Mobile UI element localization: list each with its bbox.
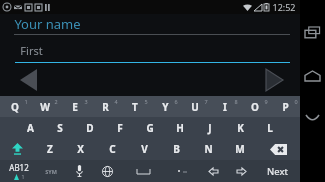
- button[interactable]: Hide keyboard: [300, 106, 325, 130]
- staticText: E: [72, 100, 78, 114]
- button[interactable]: Move right: [227, 160, 255, 182]
- button[interactable]: P: [270, 96, 300, 117]
- button[interactable]: R: [90, 96, 120, 117]
- button[interactable]: Previous: [10, 65, 46, 95]
- staticText: First: [20, 43, 43, 58]
- staticText: AB12: [9, 162, 29, 173]
- button[interactable]: B: [160, 138, 192, 160]
- button[interactable]: E: [60, 96, 90, 117]
- staticText: G: [146, 121, 154, 135]
- staticText: M: [235, 142, 245, 156]
- button[interactable]: O: [240, 96, 270, 117]
- button[interactable]: C: [96, 138, 128, 160]
- button[interactable]: J: [195, 117, 225, 138]
- button[interactable]: SYM: [37, 160, 65, 182]
- button[interactable]: W: [30, 96, 60, 117]
- staticText: O: [251, 100, 259, 114]
- staticText: L: [267, 121, 273, 135]
- staticText: 5: [144, 98, 148, 105]
- staticText: 2: [54, 98, 58, 105]
- button[interactable]: A: [15, 117, 45, 138]
- staticText: 1: [21, 173, 25, 181]
- staticText: 0: [294, 98, 298, 105]
- staticText: I: [223, 100, 227, 114]
- button[interactable]: K: [225, 117, 255, 138]
- staticText: 12:52: [272, 1, 296, 13]
- button[interactable]: Space: [121, 160, 166, 182]
- button[interactable]: X: [65, 138, 96, 160]
- button[interactable]: Backspace: [256, 138, 300, 160]
- staticText: SYM: [45, 168, 57, 175]
- staticText: 9: [264, 98, 268, 105]
- button[interactable]: Recents: [300, 20, 325, 44]
- button[interactable]: Next: [255, 160, 300, 182]
- staticText: Z: [47, 142, 53, 156]
- staticText: Next: [267, 165, 288, 178]
- button[interactable]: U: [180, 96, 210, 117]
- staticText: 7: [204, 98, 208, 105]
- staticText: J: [208, 121, 212, 135]
- staticText: Your name: [14, 15, 81, 33]
- staticText: 1: [24, 98, 28, 105]
- staticText: H: [176, 121, 184, 135]
- staticText: 4: [114, 98, 118, 105]
- button[interactable]: [166, 160, 199, 182]
- button[interactable]: F: [105, 117, 135, 138]
- staticText: X: [77, 142, 84, 156]
- staticText: W: [40, 100, 50, 114]
- button[interactable]: G: [135, 117, 165, 138]
- button[interactable]: D: [75, 117, 105, 138]
- staticText: 8: [234, 98, 238, 105]
- button[interactable]: Voice input: [65, 160, 93, 182]
- button[interactable]: Home: [300, 64, 325, 88]
- staticText: P: [282, 100, 289, 114]
- staticText: V: [141, 142, 148, 156]
- button[interactable]: S: [45, 117, 75, 138]
- staticText: 3: [84, 98, 88, 105]
- button[interactable]: Q: [0, 96, 30, 117]
- staticText: N: [204, 142, 213, 156]
- button[interactable]: T: [120, 96, 150, 117]
- button[interactable]: H: [165, 117, 195, 138]
- button[interactable]: Next: [256, 65, 292, 95]
- button[interactable]: N: [192, 138, 224, 160]
- button[interactable]: Change language: [93, 160, 121, 182]
- staticText: U: [191, 100, 199, 114]
- button[interactable]: M: [224, 138, 256, 160]
- staticText: B: [173, 142, 180, 156]
- staticText: C: [109, 142, 116, 156]
- staticText: Q: [11, 100, 19, 114]
- button[interactable]: Y: [150, 96, 180, 117]
- staticText: R: [102, 100, 109, 114]
- staticText: Y: [162, 100, 169, 114]
- staticText: K: [237, 121, 244, 135]
- staticText: A: [27, 121, 34, 135]
- button[interactable]: Move left: [199, 160, 227, 182]
- staticText: T: [132, 100, 138, 114]
- button[interactable]: Z: [34, 138, 65, 160]
- staticText: 6: [174, 98, 178, 105]
- button[interactable]: I: [210, 96, 240, 117]
- button[interactable]: V: [128, 138, 160, 160]
- button[interactable]: AB12: [0, 160, 37, 182]
- staticText: F: [117, 121, 123, 135]
- staticText: S: [57, 121, 63, 135]
- button[interactable]: L: [255, 117, 285, 138]
- staticText: D: [86, 121, 94, 135]
- button[interactable]: Shift: [0, 138, 34, 160]
